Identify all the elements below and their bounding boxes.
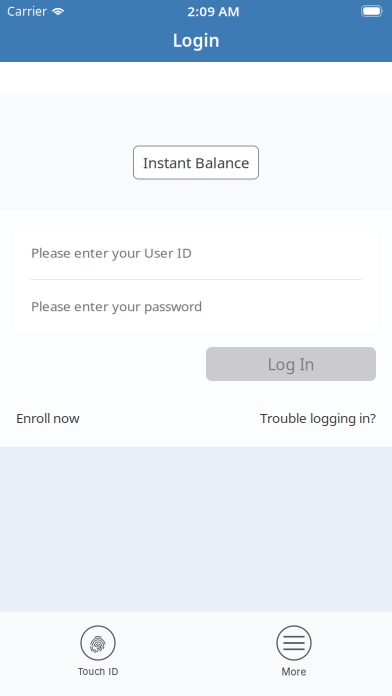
staticText: Please enter your User ID xyxy=(31,244,192,261)
button[interactable]: More xyxy=(196,612,392,696)
staticText: Enroll now xyxy=(16,409,79,427)
staticText: Log In xyxy=(267,353,314,375)
button[interactable]: Instant Balance xyxy=(133,146,258,179)
button[interactable]: Enroll now xyxy=(16,405,79,431)
staticText: Touch ID xyxy=(77,666,118,677)
staticText: Please enter your password xyxy=(31,297,202,315)
button[interactable]: Log In xyxy=(206,347,376,381)
button[interactable]: Trouble logging in? xyxy=(260,405,376,431)
button[interactable]: Touch ID xyxy=(0,612,196,696)
staticText: More xyxy=(281,666,306,678)
staticText: Trouble logging in? xyxy=(260,409,376,427)
staticText: Login xyxy=(172,28,219,51)
staticText: 2:09 AM xyxy=(187,2,239,20)
staticText: Carrier xyxy=(7,3,47,19)
staticText: Instant Balance xyxy=(143,153,249,172)
